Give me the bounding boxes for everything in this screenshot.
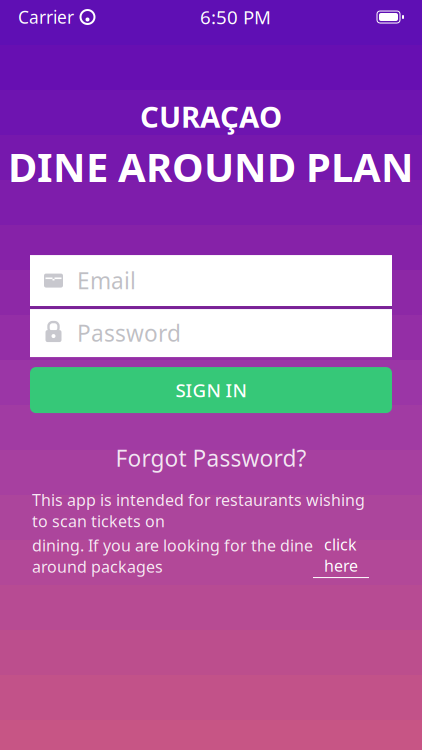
button[interactable]: Forgot Password? bbox=[30, 445, 392, 471]
staticText: 6:50 PM bbox=[200, 5, 271, 29]
staticText: dining. If you are looking for the dine … bbox=[32, 535, 313, 577]
staticText: This app is intended for restaurants wis… bbox=[32, 489, 365, 532]
staticText: Carrier bbox=[18, 5, 74, 28]
staticText: DINE AROUND PLAN bbox=[8, 140, 414, 193]
button[interactable]: Password bbox=[30, 309, 392, 357]
button[interactable]: Email bbox=[30, 255, 392, 306]
button[interactable]: This app is intended for restaurants wis… bbox=[32, 489, 390, 578]
staticText: SIGN IN bbox=[175, 378, 246, 402]
staticText: Password bbox=[77, 318, 181, 348]
staticText: CURAÇAO bbox=[140, 97, 282, 136]
staticText: Forgot Password? bbox=[115, 443, 306, 473]
staticText: Email bbox=[77, 265, 136, 296]
staticText: click here bbox=[324, 534, 358, 576]
button[interactable]: SIGN IN bbox=[30, 367, 392, 413]
